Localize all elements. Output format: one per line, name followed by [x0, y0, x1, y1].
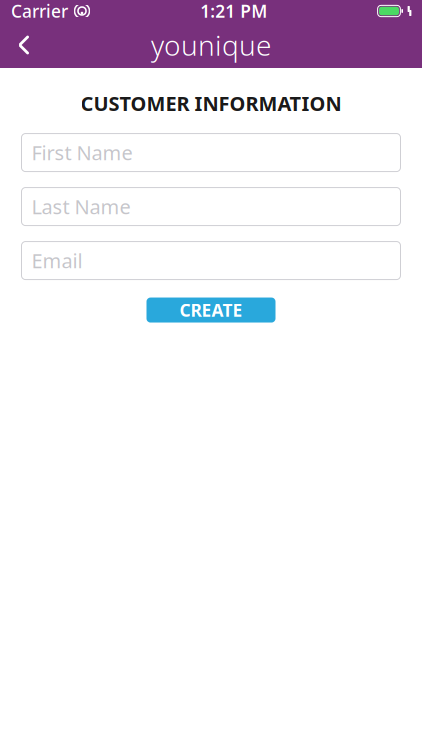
button[interactable]: First Name: [21, 134, 400, 172]
staticText: 1:21 PM: [200, 0, 267, 22]
staticText: Email: [31, 247, 82, 274]
staticText: Carrier: [11, 0, 68, 22]
staticText: CUSTOMER INFORMATION: [80, 90, 341, 117]
staticText: First Name: [31, 139, 132, 166]
staticText: younique: [151, 26, 271, 64]
staticText: CREATE: [179, 299, 242, 322]
button[interactable]: Last Name: [21, 188, 400, 226]
button[interactable]: Email: [21, 242, 400, 280]
button[interactable]: Back: [0, 22, 48, 68]
staticText: Last Name: [31, 193, 130, 220]
button[interactable]: CREATE: [146, 298, 275, 323]
